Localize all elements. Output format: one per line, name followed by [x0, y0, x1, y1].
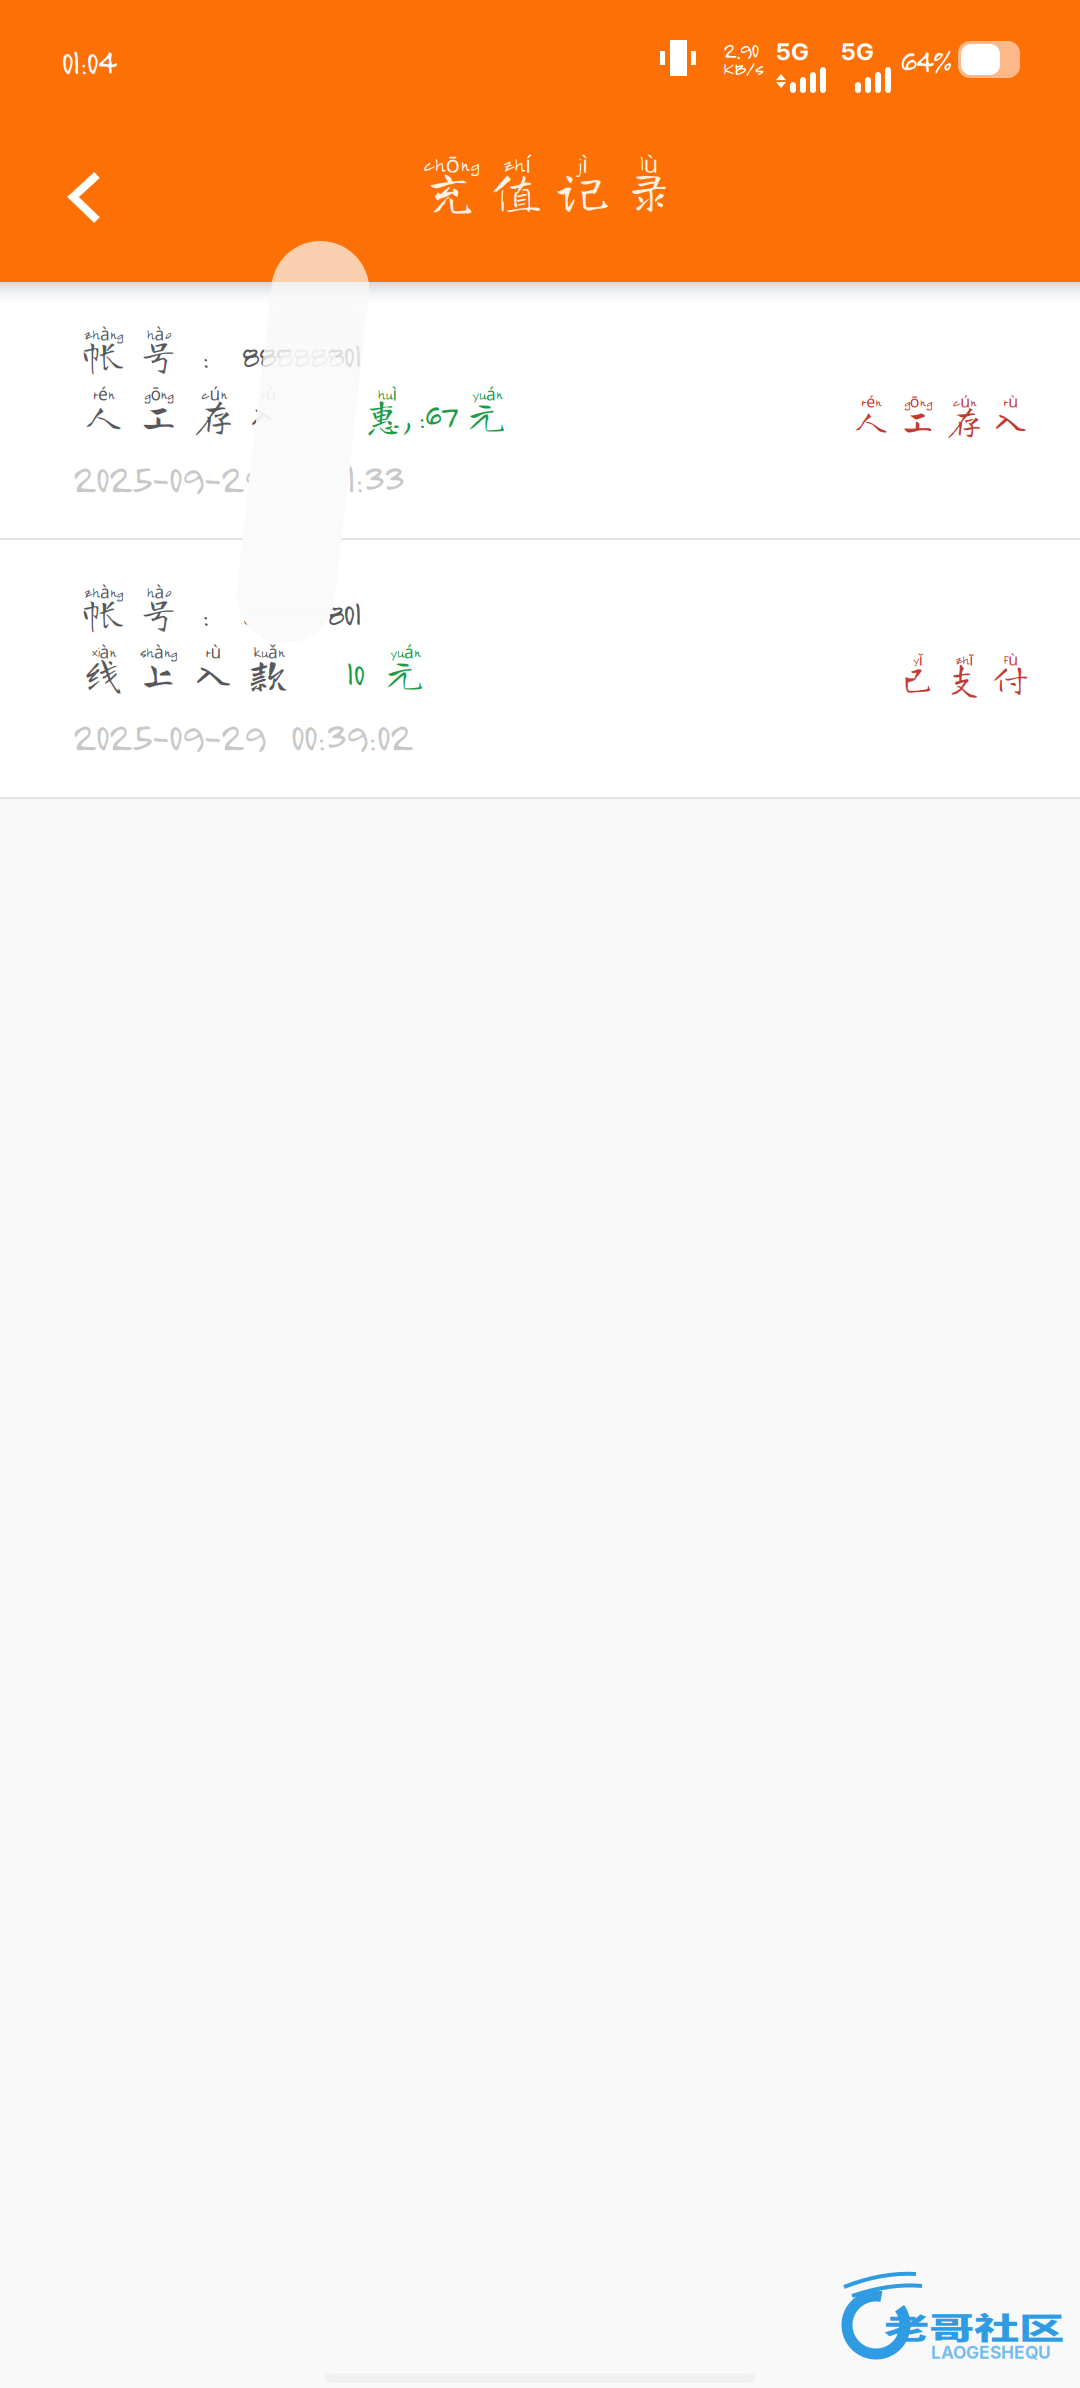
staticText: rén	[93, 382, 114, 406]
staticText: ：	[186, 593, 226, 633]
staticText: 入	[193, 653, 233, 693]
staticText: 已	[900, 660, 936, 696]
staticText: cún	[200, 382, 226, 406]
staticText: 线	[83, 653, 123, 693]
staticText: 付	[993, 660, 1029, 696]
staticText: yǐ	[913, 648, 923, 670]
staticText: 2025-09-29 00:39:02	[72, 711, 412, 760]
staticText: yuán	[472, 382, 502, 406]
staticText: xiàn	[91, 640, 115, 664]
staticText: 人	[853, 402, 889, 438]
staticText: 5G	[841, 37, 874, 66]
staticText: 帐	[83, 593, 123, 633]
staticText: 记	[557, 164, 609, 216]
staticText: 支	[946, 660, 982, 696]
staticText: zhí	[503, 147, 531, 180]
staticText: zhàng	[84, 580, 123, 604]
staticText: 惠,	[363, 395, 410, 435]
staticText: gōng	[904, 390, 932, 412]
staticText: 88888801	[241, 335, 361, 375]
staticText: 10	[346, 653, 364, 693]
staticText: 元	[385, 653, 425, 693]
staticText: 存	[193, 395, 233, 435]
staticText: huì	[377, 382, 396, 406]
staticText: 录	[623, 164, 675, 216]
staticText: 存	[946, 402, 982, 438]
staticText: 入	[248, 395, 288, 435]
staticText: lù	[639, 147, 658, 180]
staticText: 号	[138, 335, 178, 375]
staticText: 值	[491, 164, 543, 216]
staticText: LAOGESHEQU	[931, 2342, 1051, 2363]
staticText: :67	[417, 395, 456, 435]
staticText: 工	[138, 395, 178, 435]
staticText: kuǎn	[253, 640, 284, 664]
staticText: rù	[1003, 390, 1018, 412]
staticText: 充	[425, 164, 477, 216]
staticText: 2025-09-29 00:41:33	[72, 453, 403, 502]
staticText: 号	[138, 593, 178, 633]
staticText: 帐	[83, 335, 123, 375]
staticText: 01:04	[61, 40, 115, 83]
staticText: 元	[467, 395, 507, 435]
staticText: gōng	[143, 382, 173, 406]
staticText: 上	[138, 653, 178, 693]
staticText: zhàng	[84, 322, 123, 346]
staticText: rù	[260, 382, 276, 406]
staticText: hào	[146, 322, 170, 346]
staticText: 工	[900, 402, 936, 438]
staticText: 2.90	[723, 35, 758, 63]
staticText: ：	[186, 335, 226, 375]
staticText: zhī	[955, 648, 973, 670]
staticText: rù	[205, 640, 221, 664]
button[interactable]: Back	[5, 145, 147, 250]
staticText: cún	[952, 390, 976, 412]
staticText: 人	[83, 395, 123, 435]
staticText: 入	[993, 402, 1029, 438]
staticText: 老哥社区	[884, 2304, 1064, 2370]
staticText: KB/s	[723, 56, 763, 80]
staticText: 款	[248, 653, 288, 693]
staticText: rén	[861, 390, 881, 412]
staticText: fù	[1003, 648, 1018, 670]
staticText: shàng	[140, 640, 177, 664]
staticText: chōng	[422, 147, 479, 180]
staticText: jì	[578, 147, 588, 180]
staticText: 64%	[900, 41, 951, 81]
staticText: 88888801	[241, 593, 361, 633]
staticText: hào	[146, 580, 170, 604]
staticText: yuán	[390, 640, 420, 664]
staticText: 5G	[776, 37, 809, 66]
